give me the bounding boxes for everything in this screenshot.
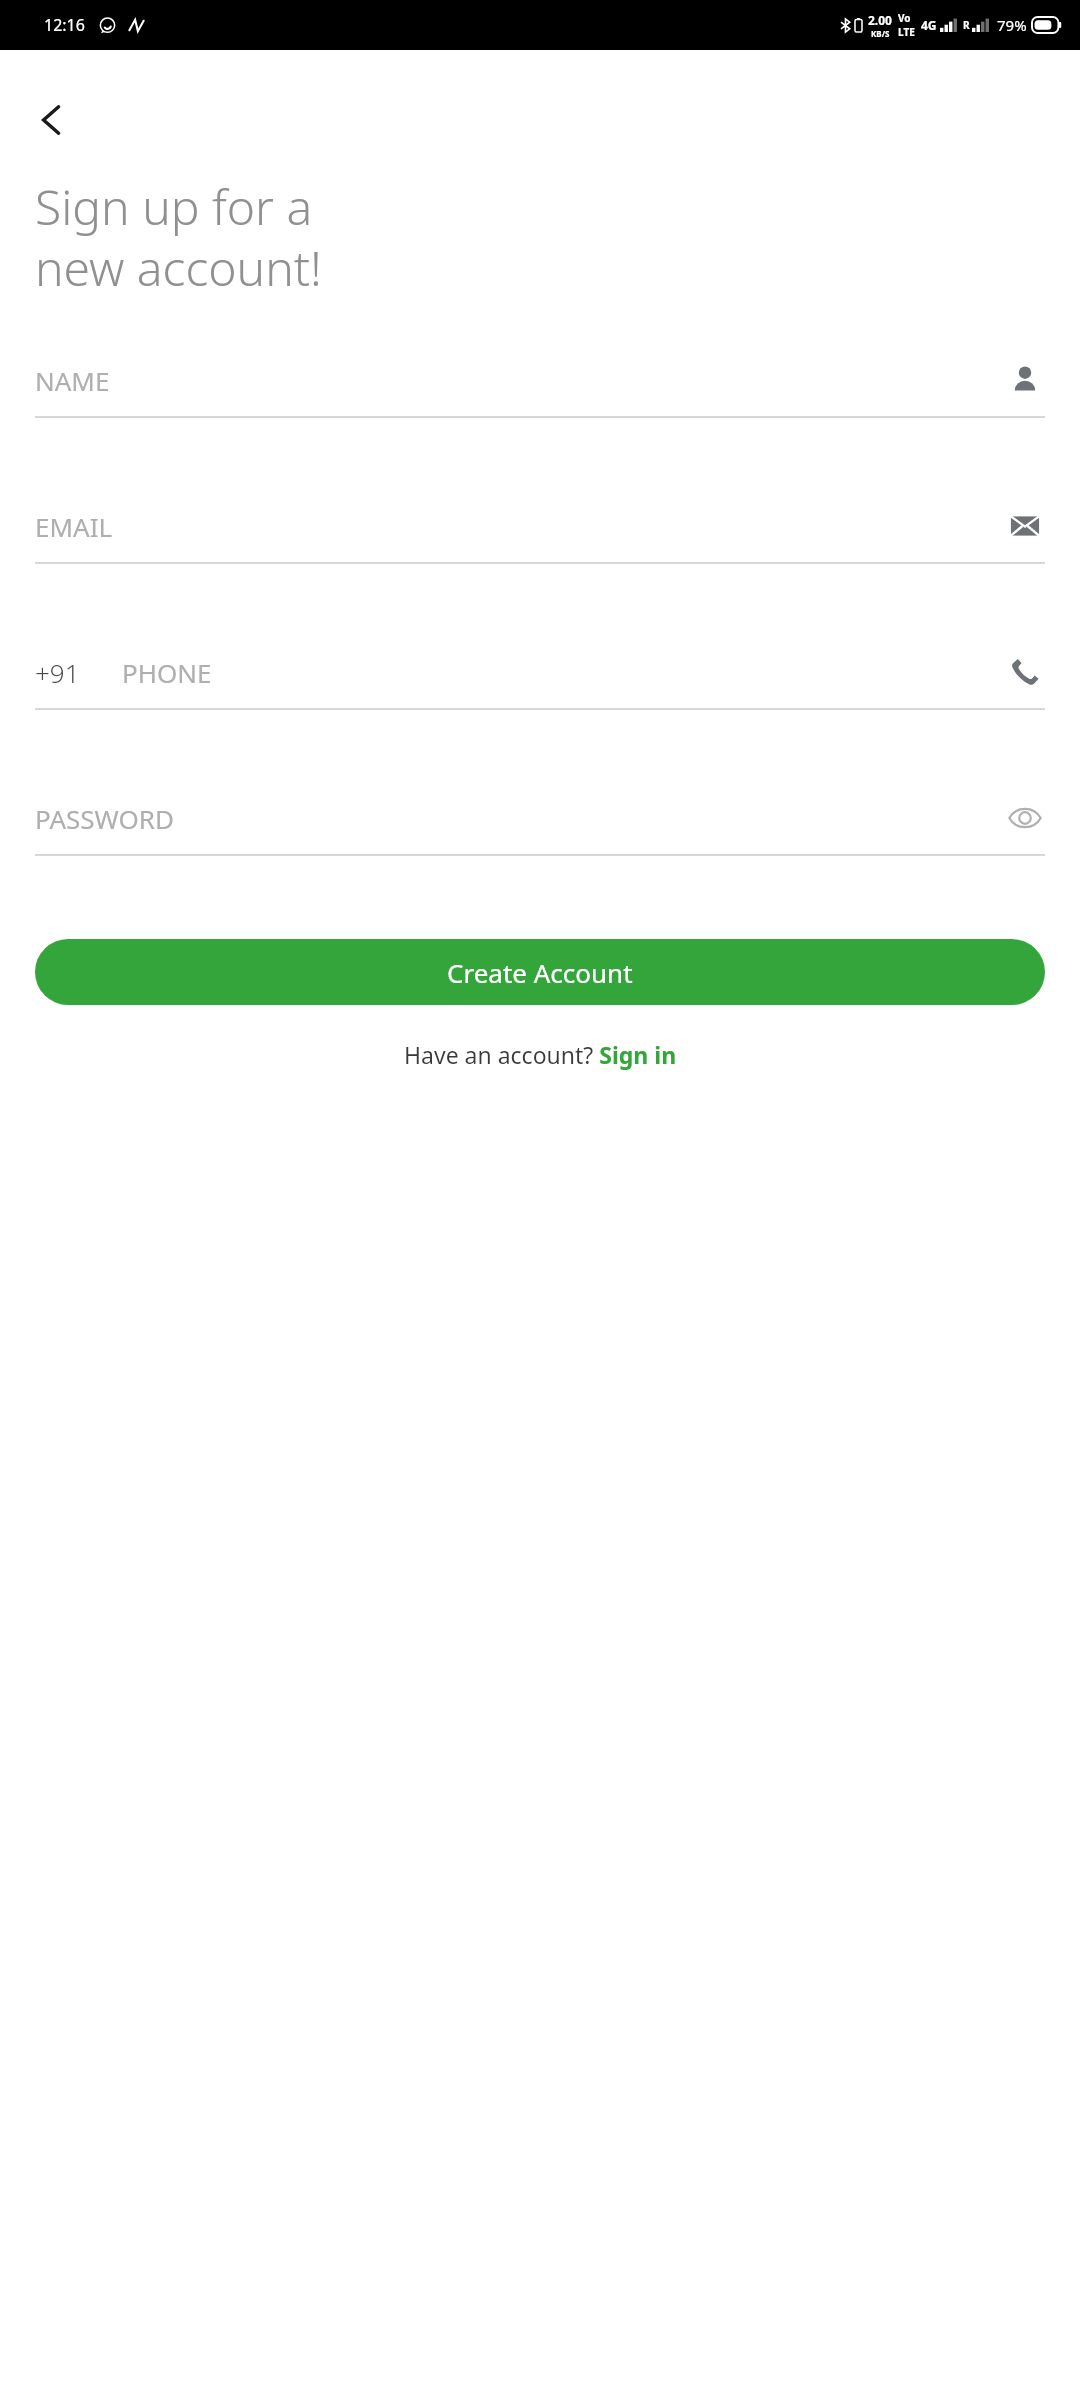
staticText: PASSWORD — [35, 801, 174, 836]
staticText: R — [963, 18, 970, 32]
button[interactable]: NAME — [35, 344, 1045, 490]
staticText: 79% — [997, 15, 1027, 35]
staticText: 2.00 — [868, 12, 892, 28]
staticText: EMAIL — [35, 509, 113, 544]
button[interactable]: Have an account? Sign in — [404, 1039, 677, 1070]
button[interactable]: EMAIL — [35, 490, 1045, 636]
staticText: PHONE — [122, 655, 212, 690]
staticText: Have an account? Sign in — [404, 1039, 677, 1070]
staticText: 4G — [921, 17, 937, 33]
staticText: LTE — [898, 25, 915, 39]
staticText: 12:16 — [44, 14, 85, 36]
staticText: Sign up for a new account! — [35, 174, 322, 300]
staticText: +91 — [35, 655, 80, 690]
button[interactable]: +91 — [35, 636, 1045, 782]
staticText: KB/S — [871, 28, 890, 39]
button[interactable]: Create Account — [35, 939, 1045, 1005]
staticText: Create Account — [447, 955, 633, 990]
staticText: Vo — [898, 11, 911, 25]
button[interactable]: Back — [26, 94, 78, 146]
staticText: NAME — [35, 363, 110, 398]
button[interactable]: PASSWORD — [35, 782, 1045, 928]
